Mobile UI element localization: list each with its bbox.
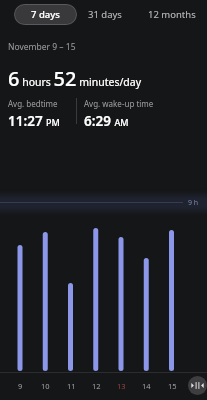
staticText: 11:27 PM [8,112,60,130]
staticText: 9 [18,381,23,391]
staticText: 31 days [88,8,122,21]
staticText: 12 [92,381,101,391]
staticText: 6:29 AM [84,112,129,130]
staticText: 9 h [188,198,199,208]
staticText: 15 [168,381,177,391]
staticText: 13 [117,381,126,391]
staticText: 10 [41,381,50,391]
staticText: 6 hours 52 minutes/day [8,65,142,92]
button[interactable]: 12 months [146,4,198,25]
staticText: Avg. wake-up time [84,98,154,109]
staticText: 11 [67,381,76,391]
button[interactable] [188,376,207,395]
staticText: 7 days [31,8,60,21]
staticText: 14 [142,381,151,391]
staticText: Avg. bedtime [8,98,58,109]
button[interactable]: 31 days [85,4,125,25]
staticText: 12 months [148,8,196,21]
staticText: November 9 – 15 [8,41,76,53]
button[interactable]: 7 days [14,4,77,25]
